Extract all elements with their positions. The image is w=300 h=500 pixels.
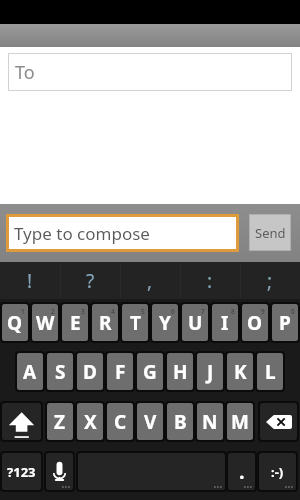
button[interactable]: :-)	[259, 453, 296, 490]
staticText: ?123	[7, 463, 36, 481]
staticText: :-)	[271, 463, 284, 481]
staticText: X	[84, 409, 97, 435]
staticText: 6	[171, 307, 175, 316]
staticText: R	[99, 310, 112, 336]
button[interactable]: N	[197, 403, 223, 440]
staticText: 2	[51, 307, 55, 316]
button[interactable]: P	[272, 304, 298, 341]
staticText: T	[130, 310, 141, 336]
staticText: ?	[86, 268, 95, 294]
staticText: To	[15, 60, 35, 85]
staticText: O	[247, 310, 263, 336]
button[interactable]: V	[137, 403, 163, 440]
button[interactable]: Backspace	[260, 403, 297, 440]
button[interactable]: A	[17, 353, 43, 390]
button[interactable]: Voice input	[46, 453, 73, 490]
staticText: Send	[255, 224, 286, 242]
staticText: M	[231, 409, 249, 435]
button[interactable]: Send	[249, 214, 291, 251]
staticText: L	[265, 359, 276, 385]
button[interactable]: Y	[152, 304, 178, 341]
button[interactable]: R	[92, 304, 118, 341]
button[interactable]: U	[182, 304, 208, 341]
staticText: D	[83, 359, 97, 385]
staticText: K	[234, 359, 247, 385]
staticText: Y	[159, 310, 171, 336]
staticText: C	[114, 409, 127, 435]
staticText: 8	[231, 307, 235, 316]
button[interactable]: ;	[240, 262, 300, 299]
staticText: U	[188, 310, 203, 336]
staticText: W	[36, 310, 55, 336]
button[interactable]: !	[0, 262, 60, 299]
staticText: G	[143, 359, 157, 385]
staticText: ;	[267, 268, 273, 294]
staticText: 4	[111, 307, 115, 316]
button[interactable]: X	[77, 403, 103, 440]
staticText: A	[23, 359, 37, 385]
button[interactable]: .	[228, 453, 255, 490]
staticText: 3	[81, 307, 85, 316]
staticText: Z	[54, 409, 66, 435]
button[interactable]: :	[180, 262, 240, 299]
button[interactable]: H	[167, 353, 193, 390]
staticText: 7	[201, 307, 205, 316]
button[interactable]: ?123	[2, 453, 41, 490]
staticText: N	[202, 409, 218, 435]
staticText: !	[27, 268, 33, 294]
staticText: .	[239, 458, 245, 485]
staticText: B	[174, 409, 187, 435]
staticText: V	[144, 409, 157, 435]
button[interactable]: E	[62, 304, 88, 341]
button[interactable]: G	[137, 353, 163, 390]
staticText: 0	[291, 307, 295, 316]
button[interactable]: Type to compose	[6, 214, 239, 252]
button[interactable]: T	[122, 304, 148, 341]
staticText: J	[207, 359, 214, 385]
staticText: ,	[147, 268, 153, 294]
staticText: P	[279, 310, 291, 336]
button[interactable]: M	[227, 403, 253, 440]
button[interactable]: ,	[120, 262, 180, 299]
staticText: F	[115, 359, 126, 385]
staticText: I	[221, 310, 229, 336]
button[interactable]: K	[227, 353, 253, 390]
button[interactable]: D	[77, 353, 103, 390]
button[interactable]: O	[242, 304, 268, 341]
staticText: 5	[141, 307, 145, 316]
staticText: H	[173, 359, 188, 385]
staticText: 1	[21, 307, 25, 316]
staticText: :	[207, 268, 213, 294]
button[interactable]: L	[257, 353, 283, 390]
button[interactable]: S	[47, 353, 73, 390]
staticText: S	[55, 359, 66, 385]
staticText: Type to compose	[14, 222, 150, 245]
button[interactable]: J	[197, 353, 223, 390]
staticText: E	[70, 310, 81, 336]
button[interactable]: F	[107, 353, 133, 390]
button[interactable]: ?	[60, 262, 120, 299]
button[interactable]: W	[32, 304, 58, 341]
button[interactable]: Q	[2, 304, 28, 341]
button[interactable]: To	[8, 53, 292, 91]
button[interactable]: Z	[47, 403, 73, 440]
button[interactable]: B	[167, 403, 193, 440]
button[interactable]: Shift	[2, 403, 41, 440]
button[interactable]: C	[107, 403, 133, 440]
staticText: 9	[261, 307, 265, 316]
button[interactable]: I	[212, 304, 238, 341]
staticText: Q	[7, 310, 23, 336]
